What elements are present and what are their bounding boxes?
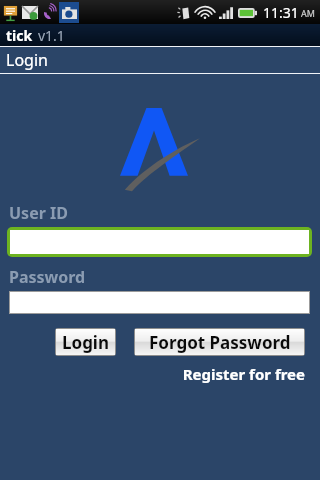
staticText: Password (9, 266, 86, 288)
staticText: AM (301, 7, 315, 19)
button[interactable]: Login (56, 329, 115, 355)
staticText: tick (6, 26, 33, 45)
staticText: Forgot Password (149, 331, 291, 354)
staticText: User ID (9, 202, 68, 224)
staticText: Register for free (0, 364, 305, 384)
button[interactable]: Forgot Password (135, 329, 304, 355)
staticText: v1.1 (38, 26, 65, 45)
button[interactable]: Register for free (0, 364, 320, 384)
staticText: Login (6, 49, 48, 71)
staticText: 11:31 (263, 3, 299, 22)
staticText: Login (62, 331, 110, 354)
